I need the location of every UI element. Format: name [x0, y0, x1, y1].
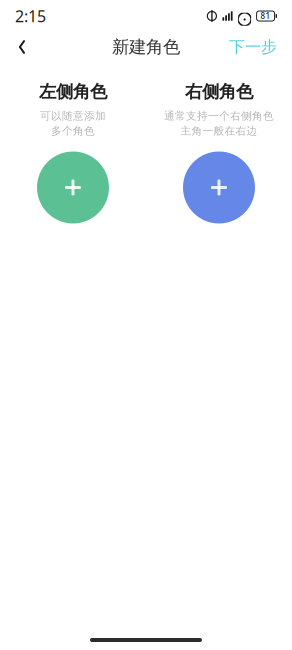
staticText: 左侧角色 [39, 81, 107, 102]
staticText: 右侧角色 [185, 81, 253, 102]
button[interactable]: 下一步 [219, 30, 287, 64]
staticText: 通常支持一个右侧角色 [164, 109, 274, 122]
staticText: 81 [261, 11, 271, 21]
staticText: 可以随意添加 [40, 109, 106, 122]
button[interactable]: 添加左侧角色 [37, 151, 109, 223]
button[interactable]: 返回 [5, 30, 39, 64]
staticText: 主角一般在右边 [180, 124, 257, 137]
staticText: 多个角色 [51, 124, 95, 137]
button[interactable]: 添加右侧角色 [183, 151, 255, 223]
staticText: 2:15 [15, 5, 46, 27]
staticText: 下一步 [229, 37, 277, 57]
staticText: 新建角色 [112, 36, 180, 58]
